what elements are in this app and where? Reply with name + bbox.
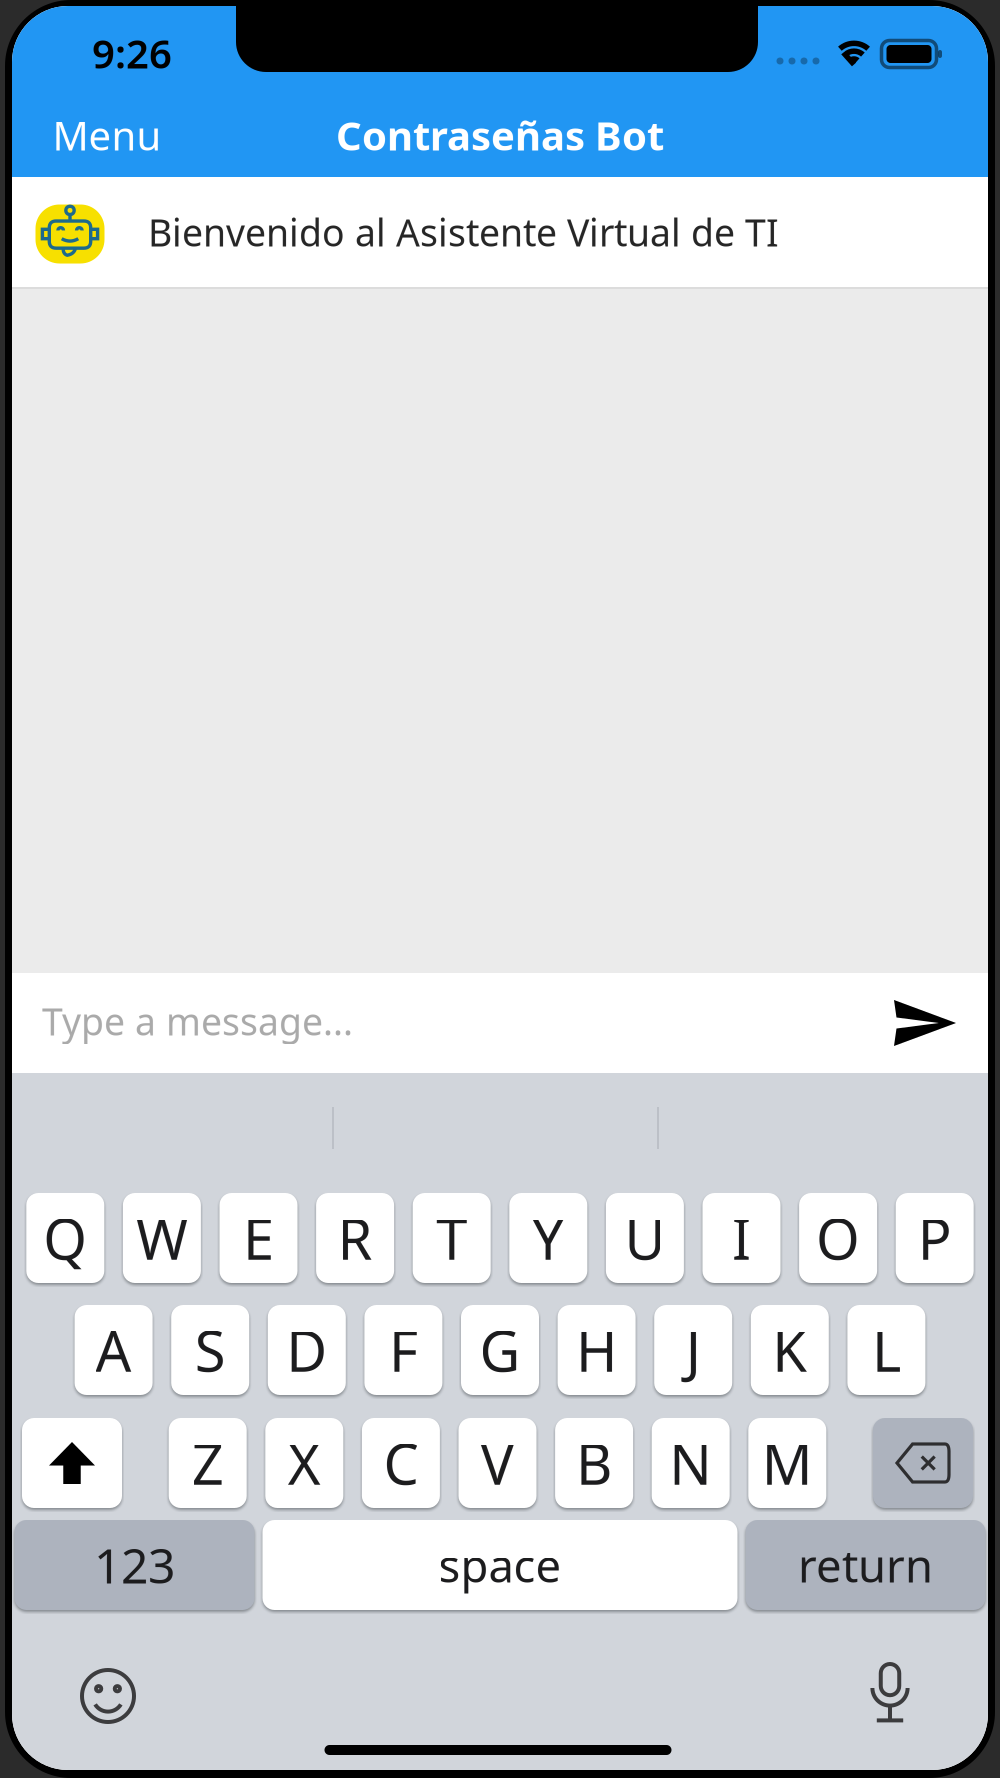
button[interactable]: F xyxy=(364,1305,442,1395)
staticText: A xyxy=(96,1313,132,1387)
button[interactable]: space xyxy=(262,1520,737,1610)
staticText: Menu xyxy=(52,108,161,161)
staticText: 9:26 xyxy=(92,26,172,79)
staticText: Y xyxy=(532,1201,564,1275)
button[interactable]: Send xyxy=(894,1000,956,1046)
button[interactable]: X xyxy=(265,1418,343,1508)
staticText: C xyxy=(383,1426,418,1500)
staticText: G xyxy=(479,1313,520,1387)
button[interactable]: E xyxy=(219,1193,297,1283)
staticText: P xyxy=(918,1201,952,1275)
button[interactable]: Dictation xyxy=(868,1664,912,1724)
button[interactable]: R xyxy=(316,1193,394,1283)
button[interactable]: T xyxy=(413,1193,491,1283)
button[interactable]: P xyxy=(896,1193,974,1283)
staticText: R xyxy=(338,1201,373,1275)
button[interactable]: 123 xyxy=(14,1520,254,1610)
button[interactable]: O xyxy=(799,1193,877,1283)
staticText: space xyxy=(438,1535,561,1595)
staticText: O xyxy=(816,1201,860,1275)
staticText: Type a message... xyxy=(42,996,353,1046)
button[interactable]: C xyxy=(362,1418,440,1508)
button[interactable]: D xyxy=(268,1305,346,1395)
button[interactable]: H xyxy=(558,1305,636,1395)
button[interactable]: M xyxy=(748,1418,826,1508)
button[interactable]: Z xyxy=(169,1418,247,1508)
staticText: U xyxy=(624,1201,665,1275)
staticText: H xyxy=(576,1313,617,1387)
button[interactable]: U xyxy=(606,1193,684,1283)
staticText: X xyxy=(288,1426,321,1500)
button[interactable]: Message field xyxy=(42,998,886,1048)
staticText: J xyxy=(686,1313,701,1387)
staticText: W xyxy=(136,1201,188,1275)
button[interactable]: B xyxy=(555,1418,633,1508)
button[interactable]: Menu xyxy=(52,108,161,161)
staticText: E xyxy=(243,1201,274,1275)
staticText: F xyxy=(389,1313,418,1387)
staticText: Bienvenido al Asistente Virtual de TI xyxy=(148,207,779,257)
button[interactable]: Delete xyxy=(873,1418,973,1508)
button[interactable]: G xyxy=(461,1305,539,1395)
button[interactable]: K xyxy=(751,1305,829,1395)
staticText: return xyxy=(798,1535,933,1595)
button[interactable]: J xyxy=(654,1305,732,1395)
button[interactable]: Y xyxy=(509,1193,587,1283)
staticText: T xyxy=(436,1201,467,1275)
staticText: K xyxy=(772,1313,807,1387)
button[interactable]: A xyxy=(75,1305,153,1395)
button[interactable]: Emoji xyxy=(80,1668,136,1724)
staticText: Q xyxy=(43,1201,87,1275)
button[interactable]: L xyxy=(847,1305,925,1395)
staticText: I xyxy=(732,1201,751,1275)
staticText: M xyxy=(762,1426,813,1500)
button[interactable]: V xyxy=(458,1418,536,1508)
staticText: Z xyxy=(192,1426,224,1500)
button[interactable]: S xyxy=(171,1305,249,1395)
staticText: V xyxy=(480,1426,514,1500)
staticText: L xyxy=(872,1313,901,1387)
button[interactable]: Shift xyxy=(22,1418,122,1508)
button[interactable]: W xyxy=(123,1193,201,1283)
staticText: Contraseñas Bot xyxy=(336,108,664,161)
staticText: S xyxy=(195,1313,226,1387)
button[interactable]: I xyxy=(702,1193,780,1283)
staticText: N xyxy=(669,1426,712,1500)
button[interactable]: N xyxy=(652,1418,730,1508)
staticText: 123 xyxy=(94,1533,175,1597)
button[interactable]: Q xyxy=(26,1193,104,1283)
staticText: B xyxy=(576,1426,612,1500)
staticText: D xyxy=(286,1313,327,1387)
button[interactable]: return xyxy=(745,1520,985,1610)
